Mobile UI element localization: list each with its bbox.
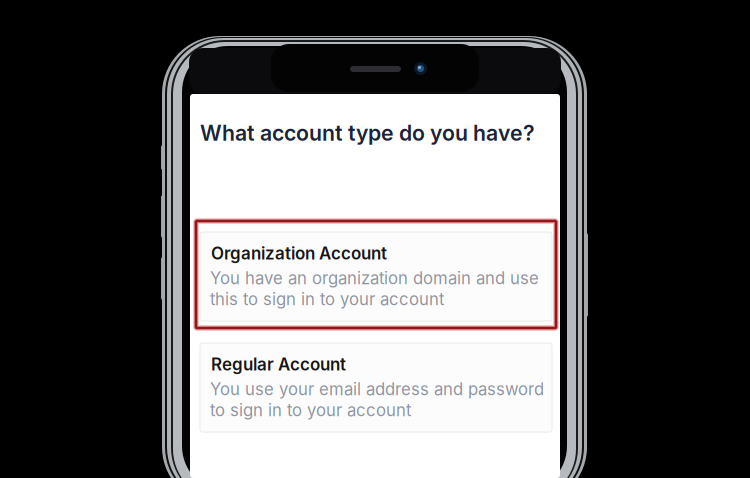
staticText: Organization Account — [211, 243, 387, 263]
staticText: this to sign in to your account — [210, 289, 444, 309]
staticText: You use your email address and password — [210, 379, 544, 399]
button[interactable]: Regular Account — [200, 343, 552, 432]
staticText: Regular Account — [211, 354, 346, 374]
button[interactable]: Organization Account — [200, 232, 552, 321]
staticText: to sign in to your account — [210, 400, 411, 420]
staticText: What account type do you have? — [200, 120, 535, 146]
staticText: You have an organization domain and use — [210, 268, 539, 288]
